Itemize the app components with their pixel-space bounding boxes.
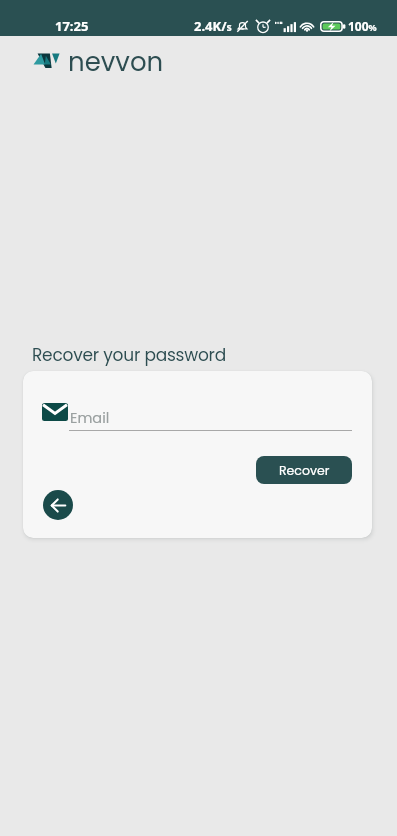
staticText: 100% xyxy=(348,18,377,34)
button[interactable]: Recover xyxy=(256,456,352,484)
staticText: Recover your password xyxy=(32,343,227,367)
staticText: 17:25 xyxy=(55,17,89,35)
staticText: nevvon xyxy=(68,44,164,80)
button[interactable]: Back xyxy=(43,490,73,520)
staticText: Email xyxy=(70,408,110,428)
staticText: Recover xyxy=(279,462,330,479)
staticText: 2.4K/s xyxy=(194,17,232,35)
